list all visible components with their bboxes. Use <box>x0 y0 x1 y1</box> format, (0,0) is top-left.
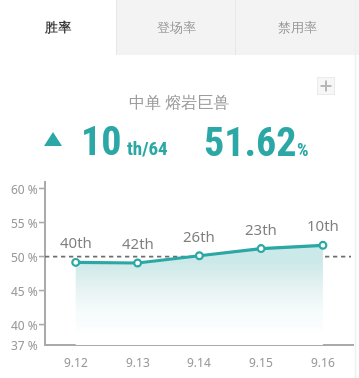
staticText: 9.15 <box>249 354 273 370</box>
staticText: 9.14 <box>187 354 211 370</box>
button[interactable]: 登场率 <box>117 0 235 55</box>
staticText: 9.12 <box>64 354 88 370</box>
staticText: 45 % <box>11 283 38 299</box>
staticText: 禁用率 <box>278 19 317 35</box>
staticText: 胜率 <box>45 19 71 35</box>
staticText: 55 % <box>11 215 38 231</box>
staticText: 10th <box>307 215 339 235</box>
staticText: 9.16 <box>311 354 335 370</box>
button[interactable]: Add champion <box>317 77 335 95</box>
staticText: 40 % <box>11 317 38 333</box>
staticText: th/64 <box>127 137 168 159</box>
staticText: 37 % <box>11 337 38 353</box>
staticText: 9.13 <box>126 354 150 370</box>
staticText: 26th <box>183 226 215 246</box>
staticText: % <box>297 139 309 160</box>
staticText: 42th <box>122 233 154 253</box>
staticText: 40th <box>60 232 92 252</box>
button[interactable]: 禁用率 <box>236 0 359 55</box>
staticText: 51.62 <box>204 119 297 166</box>
staticText: 10 <box>81 118 122 165</box>
staticText: 23th <box>245 219 277 239</box>
button[interactable]: 胜率 <box>0 0 116 55</box>
staticText: 60 % <box>11 181 38 197</box>
staticText: 50 % <box>11 249 38 265</box>
staticText: 中单 熔岩巨兽 <box>129 91 230 113</box>
staticText: 登场率 <box>157 19 196 35</box>
